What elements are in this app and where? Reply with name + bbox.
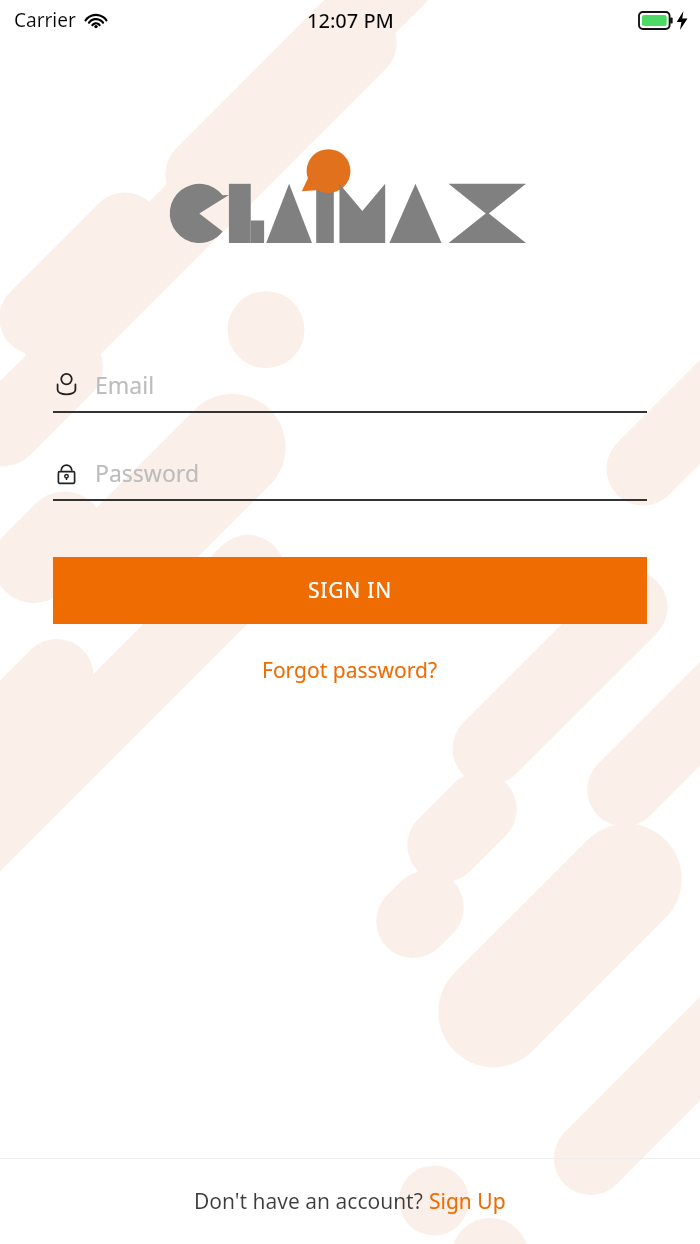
staticText: Carrier [14, 7, 76, 33]
staticText: Sign Up [429, 1187, 506, 1216]
button[interactable]: SIGN IN [53, 557, 647, 624]
button[interactable]: Forgot password? [262, 656, 438, 685]
other: Email [53, 371, 80, 398]
staticText: Email [95, 369, 155, 400]
staticText: Password [95, 457, 200, 488]
staticText: Don't have an account? [194, 1187, 429, 1216]
button[interactable]: Password [53, 446, 647, 501]
other: Password [53, 459, 80, 486]
staticText: Forgot password? [262, 656, 438, 685]
staticText: 12:07 PM [307, 7, 394, 34]
staticText: SIGN IN [308, 576, 393, 605]
button[interactable]: Sign Up [429, 1187, 506, 1216]
button[interactable]: Email [53, 358, 647, 413]
